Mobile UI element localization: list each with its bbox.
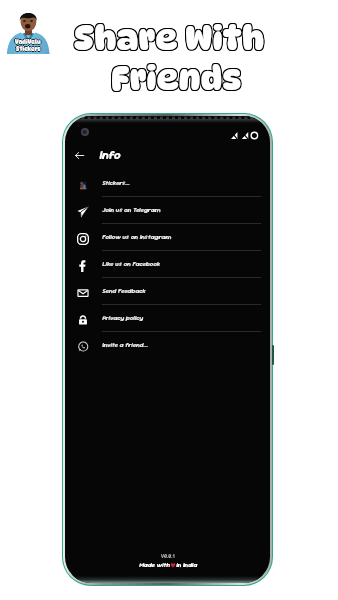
- staticText: Friends: [110, 57, 241, 97]
- staticText: Stickers: [16, 46, 41, 53]
- staticText: Send Feedback: [102, 287, 146, 295]
- staticText: Friends: [112, 59, 243, 99]
- staticText: Share With: [75, 17, 266, 57]
- staticText: Friends: [110, 58, 241, 98]
- staticText: Share With: [75, 19, 266, 59]
- staticText: VadiVelu: [15, 39, 41, 46]
- staticText: Friends: [110, 57, 241, 97]
- button[interactable]: Join us on Telegram: [65, 197, 270, 224]
- staticText: V0.0.1: [161, 553, 175, 559]
- button[interactable]: Stickers...: [65, 170, 270, 197]
- staticText: Stickers...: [102, 179, 130, 187]
- staticText: Privacy policy: [102, 314, 143, 322]
- staticText: Friends: [112, 57, 243, 97]
- staticText: VadiVelu: [15, 39, 41, 46]
- staticText: Stickers: [16, 46, 41, 53]
- staticText: Info: [99, 148, 121, 163]
- staticText: Follow us on Instagram: [102, 233, 171, 241]
- staticText: Friends: [112, 58, 243, 98]
- staticText: VadiVelu: [15, 39, 41, 46]
- staticText: in India: [176, 561, 197, 569]
- staticText: Like us on Facebook: [102, 260, 160, 268]
- staticText: Share With: [74, 19, 265, 59]
- staticText: Share With: [74, 17, 265, 57]
- button[interactable]: Like us on Facebook: [65, 251, 270, 278]
- staticText: VadiVelu: [15, 40, 41, 47]
- staticText: Share With: [73, 19, 264, 59]
- staticText: Stickers: [16, 47, 41, 54]
- staticText: Share With: [73, 18, 264, 58]
- button[interactable]: Send Feedback: [65, 278, 270, 305]
- staticText: Share With: [75, 17, 266, 57]
- staticText: VadiVelu: [15, 38, 41, 45]
- staticText: Stickers: [16, 46, 41, 53]
- staticText: Friends: [112, 59, 243, 99]
- staticText: Share With: [73, 17, 264, 57]
- staticText: Join us on Telegram: [102, 206, 161, 214]
- button[interactable]: Invite a friend...: [65, 332, 270, 358]
- staticText: Friends: [110, 59, 241, 99]
- button[interactable]: Follow us on Instagram: [65, 224, 270, 251]
- staticText: Stickers: [17, 46, 42, 53]
- button[interactable]: Back: [65, 141, 94, 169]
- staticText: VadiVelu: [16, 39, 42, 46]
- staticText: VadiVelu: [14, 39, 40, 46]
- button[interactable]: Privacy policy: [65, 305, 270, 332]
- staticText: VadiVelu: [15, 39, 41, 46]
- staticText: Share With: [75, 19, 266, 59]
- staticText: Invite a friend...: [102, 341, 148, 349]
- staticText: Share With: [73, 17, 264, 57]
- staticText: Friends: [111, 58, 242, 98]
- staticText: Made with: [139, 561, 170, 569]
- staticText: Stickers: [15, 46, 40, 53]
- staticText: Share With: [74, 18, 265, 58]
- staticText: Stickers: [16, 45, 41, 52]
- staticText: Stickers: [16, 46, 41, 53]
- staticText: Share With: [75, 18, 266, 58]
- staticText: Friends: [111, 59, 242, 99]
- staticText: Stickers: [16, 46, 41, 53]
- staticText: Friends: [112, 57, 243, 97]
- staticText: Share With: [73, 19, 264, 59]
- staticText: Friends: [111, 57, 242, 97]
- staticText: Friends: [110, 59, 241, 99]
- staticText: VadiVelu: [15, 39, 41, 46]
